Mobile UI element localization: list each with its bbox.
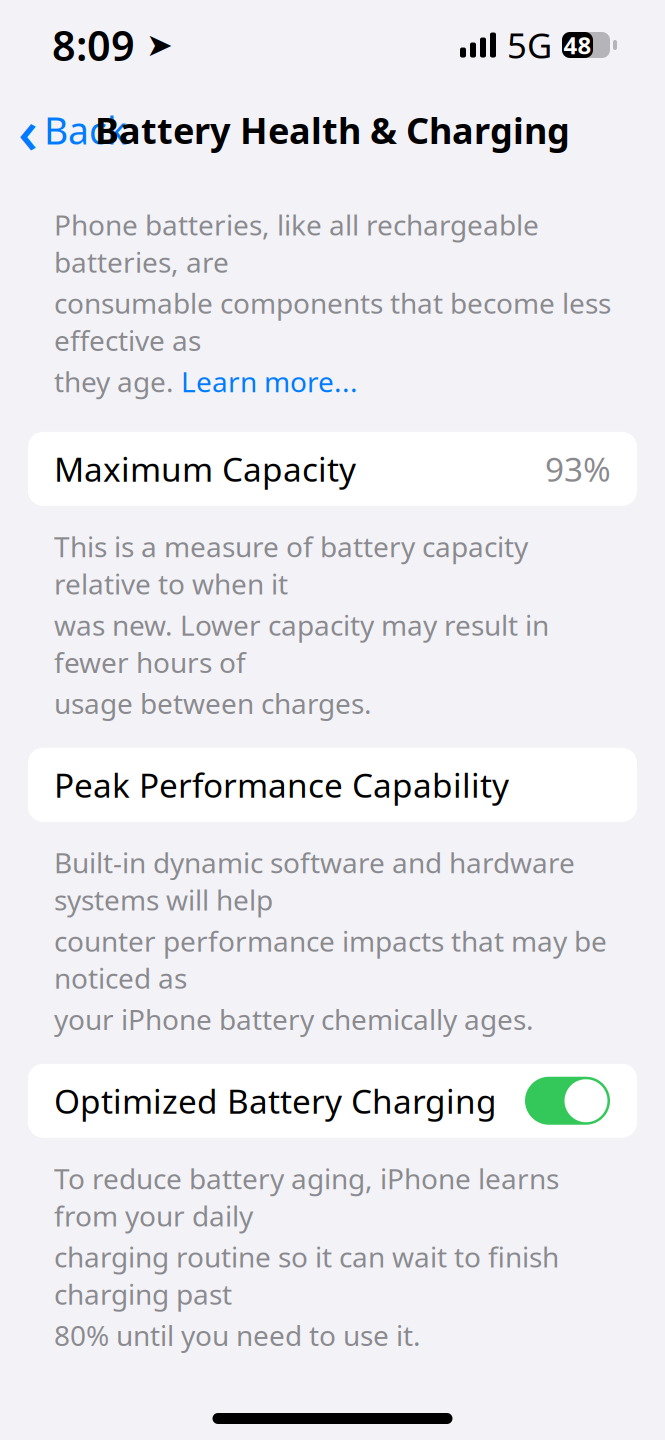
staticText: To reduce battery aging, iPhone learns f… <box>54 1160 559 1234</box>
staticText: 80% until you need to use it. <box>54 1316 421 1354</box>
button[interactable]: Optimized Battery Charging <box>28 1064 637 1138</box>
staticText: Built-in dynamic software and hardware s… <box>54 844 575 918</box>
staticText: 93% <box>545 447 611 491</box>
staticText: This is a measure of battery capacity re… <box>54 528 528 602</box>
staticText: ➤ <box>135 27 173 63</box>
staticText: Phone batteries, like all rechargeable b… <box>54 206 539 280</box>
button[interactable]: Learn more... <box>181 363 358 400</box>
button[interactable]: ‹ <box>4 83 141 177</box>
staticText: they age. <box>54 363 181 400</box>
staticText: usage between charges. <box>54 685 372 722</box>
staticText: 8:09 <box>52 18 135 72</box>
staticText: your iPhone battery chemically ages. <box>54 1001 534 1038</box>
button[interactable]: Peak Performance Capability <box>28 748 637 822</box>
staticText: ‹ <box>18 89 38 171</box>
staticText: Peak Performance Capability <box>54 763 509 807</box>
staticText: counter performance impacts that may be … <box>54 922 607 997</box>
staticText: consumable components that become less e… <box>54 284 611 359</box>
button[interactable]: Maximum Capacity <box>28 432 637 506</box>
staticText: charging routine so it can wait to finis… <box>54 1238 559 1312</box>
staticText: was new. Lower capacity may result in fe… <box>54 606 549 681</box>
staticText: Maximum Capacity <box>54 447 356 491</box>
staticText: Learn more... <box>181 363 358 400</box>
staticText: Back <box>44 105 127 155</box>
staticText: Optimized Battery Charging <box>54 1079 497 1123</box>
staticText: 48 <box>563 29 591 61</box>
staticText: Battery Health & Charging <box>95 106 570 154</box>
staticText: 5G <box>507 22 552 68</box>
